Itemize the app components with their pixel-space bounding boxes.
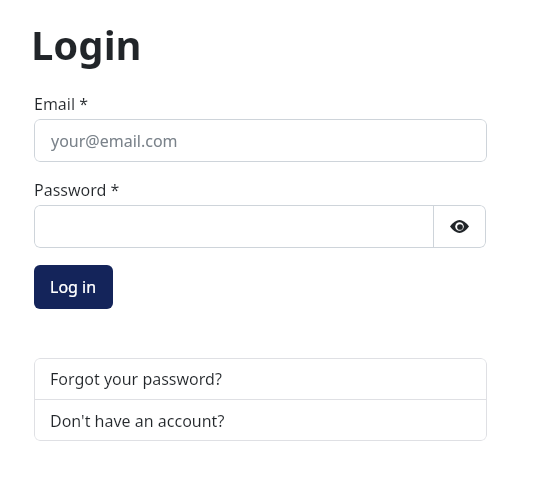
staticText: Password * xyxy=(34,179,120,201)
staticText: Login xyxy=(31,17,142,71)
button[interactable]: your@email.com xyxy=(34,119,487,162)
button[interactable]: Log in xyxy=(34,265,113,309)
staticText: your@email.com xyxy=(51,130,178,152)
button[interactable] xyxy=(34,205,434,248)
staticText: Email * xyxy=(34,93,89,115)
staticText: Forgot your password? xyxy=(50,368,222,390)
staticText: Don't have an account? xyxy=(50,410,225,432)
staticText: Log in xyxy=(50,276,97,298)
button[interactable]: Forgot your password? xyxy=(34,358,487,399)
button[interactable] xyxy=(433,205,486,248)
button[interactable]: Don't have an account? xyxy=(34,400,487,441)
